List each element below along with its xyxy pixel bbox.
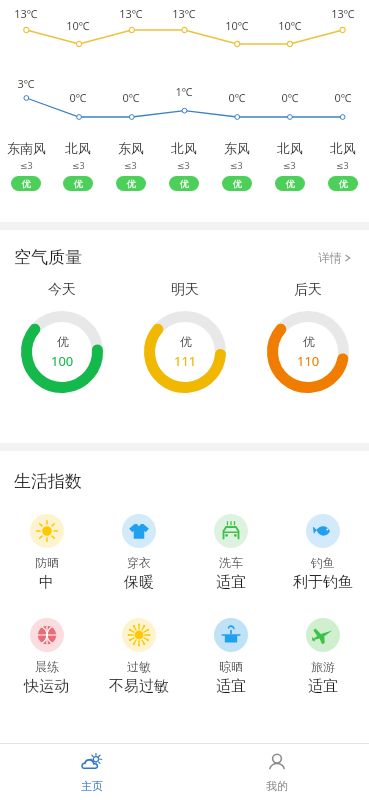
staticText: 13℃: [14, 6, 38, 21]
staticText: 优: [74, 178, 83, 189]
staticText: 优: [339, 178, 348, 189]
button[interactable]: 钓鱼: [277, 514, 369, 592]
staticText: 中: [39, 573, 54, 592]
staticText: ≤3: [230, 159, 243, 171]
staticText: 13℃: [172, 6, 196, 21]
staticText: 北风: [171, 140, 197, 156]
button[interactable]: 北风: [157, 140, 210, 191]
staticText: 0℃: [228, 90, 246, 105]
staticText: 后天: [294, 281, 322, 299]
staticText: 3℃: [17, 76, 35, 91]
staticText: 110: [297, 352, 320, 370]
staticText: 穿衣: [127, 555, 151, 570]
button[interactable]: 详情: [314, 246, 355, 269]
staticText: 13℃: [331, 6, 355, 21]
staticText: 1℃: [175, 84, 193, 99]
staticText: 10℃: [278, 18, 302, 33]
button[interactable]: 晾晒: [185, 618, 277, 696]
button[interactable]: 北风: [263, 140, 316, 191]
staticText: 今天: [48, 281, 76, 299]
button[interactable]: 东风: [104, 140, 157, 191]
other: 我的: [266, 752, 288, 774]
button[interactable]: 主页: [0, 744, 184, 800]
button[interactable]: 洗车: [185, 514, 277, 592]
button[interactable]: 北风: [52, 140, 104, 191]
staticText: 10℃: [225, 18, 249, 33]
staticText: 优: [180, 334, 192, 349]
staticText: 详情: [318, 250, 342, 265]
staticText: 北风: [330, 140, 356, 156]
staticText: 东风: [224, 140, 250, 156]
staticText: 主页: [81, 779, 103, 793]
staticText: 优: [303, 334, 315, 349]
staticText: 100: [51, 352, 74, 370]
staticText: ≤3: [177, 159, 190, 171]
staticText: 0℃: [281, 90, 299, 105]
button[interactable]: 过敏: [93, 618, 185, 696]
staticText: 优: [57, 334, 69, 349]
staticText: 防晒: [35, 555, 59, 570]
staticText: 利于钓鱼: [293, 573, 353, 592]
staticText: 保暖: [124, 573, 154, 592]
staticText: 111: [174, 352, 197, 370]
staticText: 旅游: [311, 659, 335, 674]
staticText: ≤3: [283, 159, 296, 171]
button[interactable]: 今天: [0, 281, 123, 393]
other: 主页: [81, 752, 103, 774]
button[interactable]: 防晒: [0, 514, 93, 592]
staticText: 东南风: [7, 140, 46, 156]
staticText: 生活指数: [14, 471, 82, 492]
staticText: 优: [22, 178, 31, 189]
button[interactable]: 晨练: [0, 618, 93, 696]
button[interactable]: 明天: [123, 281, 246, 393]
staticText: 快运动: [24, 677, 69, 696]
staticText: ≤3: [124, 159, 137, 171]
button[interactable]: 东风: [210, 140, 263, 191]
staticText: 0℃: [334, 90, 352, 105]
staticText: 北风: [277, 140, 303, 156]
staticText: 过敏: [127, 659, 151, 674]
staticText: 空气质量: [14, 247, 82, 268]
staticText: 13℃: [119, 6, 143, 21]
staticText: 晾晒: [219, 659, 243, 674]
staticText: 我的: [266, 779, 288, 793]
staticText: 适宜: [308, 677, 338, 696]
staticText: 优: [286, 178, 295, 189]
button[interactable]: 我的: [184, 744, 369, 800]
button[interactable]: 东南风: [0, 140, 52, 191]
staticText: 适宜: [216, 573, 246, 592]
button[interactable]: 旅游: [277, 618, 369, 696]
staticText: 优: [180, 178, 189, 189]
staticText: 优: [127, 178, 136, 189]
staticText: 10℃: [66, 18, 90, 33]
staticText: ≤3: [336, 159, 349, 171]
staticText: 优: [233, 178, 242, 189]
staticText: 洗车: [219, 555, 243, 570]
staticText: 北风: [65, 140, 91, 156]
staticText: 不易过敏: [109, 677, 169, 696]
staticText: 钓鱼: [311, 555, 335, 570]
button[interactable]: 北风: [316, 140, 369, 191]
staticText: 东风: [118, 140, 144, 156]
staticText: 0℃: [122, 90, 140, 105]
staticText: 适宜: [216, 677, 246, 696]
staticText: 晨练: [35, 659, 59, 674]
staticText: 0℃: [69, 90, 87, 105]
button[interactable]: 后天: [246, 281, 369, 393]
staticText: 明天: [171, 281, 199, 299]
staticText: ≤3: [20, 159, 33, 171]
button[interactable]: 穿衣: [93, 514, 185, 592]
staticText: ≤3: [72, 159, 85, 171]
